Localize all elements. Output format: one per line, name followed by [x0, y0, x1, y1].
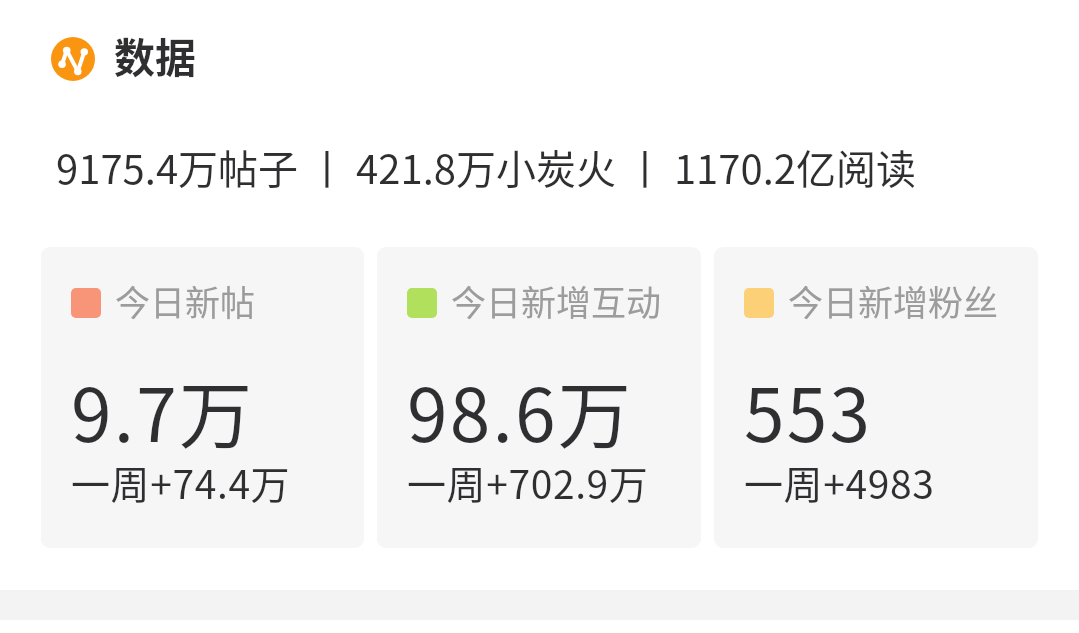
button[interactable]: 今日新增粉丝 — [714, 247, 1038, 548]
button[interactable]: 今日新增互动 — [377, 247, 701, 548]
staticText: 数据 — [114, 25, 196, 81]
button[interactable]: Data overview — [51, 37, 95, 81]
staticText: 一周+702.9万 — [407, 454, 649, 510]
staticText: 一周+74.4万 — [71, 454, 291, 510]
staticText: 9175.4万帖子 丨 421.8万小炭火 丨 1170.2亿阅读 — [56, 138, 916, 196]
staticText: 一周+4983 — [744, 454, 935, 510]
staticText: 98.6万 — [407, 357, 633, 463]
staticText: 553 — [744, 357, 873, 463]
staticText: 今日新帖 — [115, 275, 256, 326]
staticText: 今日新增粉丝 — [788, 275, 999, 326]
staticText: 今日新增互动 — [451, 275, 662, 326]
button[interactable]: 数据 — [110, 25, 202, 81]
staticText: 9.7万 — [71, 357, 255, 463]
button[interactable]: 今日新帖 — [41, 247, 364, 548]
